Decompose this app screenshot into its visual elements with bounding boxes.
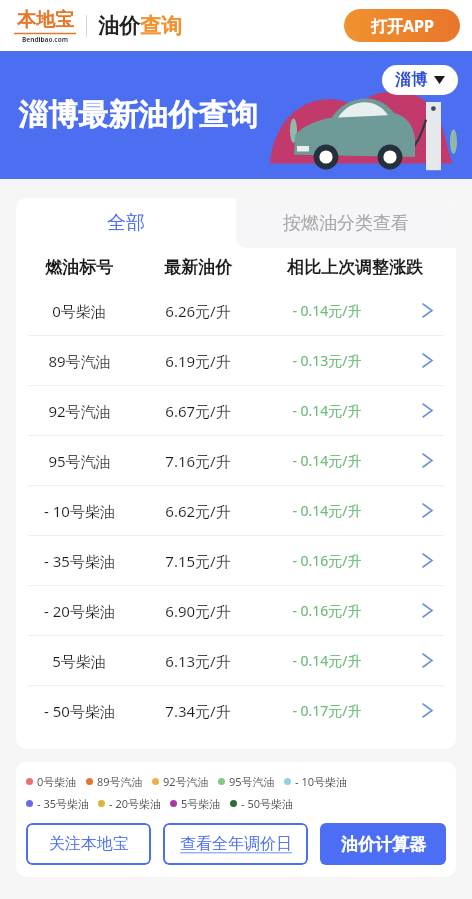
staticText: 6.67元/升 <box>165 401 231 421</box>
button[interactable]: 95号汽油 <box>16 436 456 485</box>
staticText: - 50号柴油 <box>44 701 115 721</box>
staticText: 查询 <box>140 13 182 39</box>
button[interactable]: - 10号柴油 <box>16 486 456 535</box>
staticText: 淄博 <box>395 70 427 90</box>
other: 查看详情 <box>399 536 456 585</box>
other: 查看详情 <box>399 686 456 735</box>
button[interactable]: 查看全年调价日 <box>163 823 308 865</box>
staticText: - 20号柴油 <box>109 796 161 811</box>
staticText: 6.62元/升 <box>165 501 231 521</box>
other: 查看详情 <box>399 586 456 635</box>
staticText: 7.15元/升 <box>165 551 231 571</box>
staticText: 5号柴油 <box>52 651 106 671</box>
staticText: 92号汽油 <box>163 774 209 789</box>
button[interactable]: 淄博 <box>382 65 458 95</box>
other: 查看详情 <box>399 336 456 385</box>
staticText: 按燃油分类查看 <box>283 212 409 235</box>
button[interactable]: - 20号柴油 <box>16 586 456 635</box>
staticText: - 0.14元/升 <box>292 451 362 470</box>
button[interactable]: 0号柴油 <box>16 286 456 335</box>
staticText: - 0.16元/升 <box>292 601 362 620</box>
staticText: - 35号柴油 <box>44 551 115 571</box>
other: 查看详情 <box>399 636 456 685</box>
staticText: 7.16元/升 <box>165 451 231 471</box>
staticText: 89号汽油 <box>48 351 111 371</box>
staticText: - 0.13元/升 <box>292 351 362 370</box>
button[interactable]: 92号汽油 <box>16 386 456 435</box>
staticText: 查看全年调价日 <box>180 834 292 854</box>
staticText: 95号汽油 <box>48 451 111 471</box>
staticText: 6.19元/升 <box>165 351 231 371</box>
staticText: 打开APP <box>371 15 434 37</box>
staticText: - 10号柴油 <box>295 774 347 789</box>
staticText: 燃油标号 <box>45 257 113 278</box>
staticText: 5号柴油 <box>181 796 221 811</box>
staticText: 油价 <box>98 13 140 39</box>
other: 查看详情 <box>399 386 456 435</box>
staticText: - 0.16元/升 <box>292 551 362 570</box>
button[interactable]: 全部 <box>16 198 236 248</box>
button[interactable]: - 50号柴油 <box>16 686 456 735</box>
staticText: 0号柴油 <box>52 301 106 321</box>
staticText: 本地宝 <box>17 8 74 32</box>
staticText: - 35号柴油 <box>37 796 89 811</box>
staticText: 全部 <box>107 211 145 235</box>
button[interactable]: 油价计算器 <box>320 823 446 865</box>
staticText: 7.34元/升 <box>165 701 231 721</box>
button[interactable]: 5号柴油 <box>16 636 456 685</box>
other: 查看详情 <box>399 286 456 335</box>
button[interactable]: 89号汽油 <box>16 336 456 385</box>
button[interactable]: - 35号柴油 <box>16 536 456 585</box>
staticText: 最新油价 <box>164 257 232 278</box>
staticText: - 0.14元/升 <box>292 301 362 320</box>
staticText: - 0.14元/升 <box>292 651 362 670</box>
staticText: 6.13元/升 <box>165 651 231 671</box>
button[interactable]: 关注本地宝 <box>26 823 151 865</box>
staticText: - 0.14元/升 <box>292 501 362 520</box>
staticText: 0号柴油 <box>37 774 77 789</box>
staticText: 关注本地宝 <box>49 834 129 854</box>
staticText: 淄博最新油价查询 <box>18 96 258 134</box>
staticText: 89号汽油 <box>97 774 143 789</box>
staticText: - 50号柴油 <box>241 796 293 811</box>
button[interactable]: 打开APP <box>344 9 460 42</box>
other: 查看详情 <box>399 436 456 485</box>
staticText: 6.26元/升 <box>165 301 231 321</box>
button[interactable]: 按燃油分类查看 <box>236 198 456 248</box>
staticText: 油价计算器 <box>341 834 426 855</box>
staticText: 6.90元/升 <box>165 601 231 621</box>
staticText: 相比上次调整涨跌 <box>287 257 423 278</box>
staticText: Bendibao.com <box>22 35 69 44</box>
staticText: - 0.17元/升 <box>292 701 362 720</box>
staticText: - 10号柴油 <box>44 501 115 521</box>
staticText: 92号汽油 <box>48 401 111 421</box>
staticText: - 20号柴油 <box>44 601 115 621</box>
staticText: 95号汽油 <box>229 774 275 789</box>
other: 查看详情 <box>399 486 456 535</box>
staticText: - 0.14元/升 <box>292 401 362 420</box>
